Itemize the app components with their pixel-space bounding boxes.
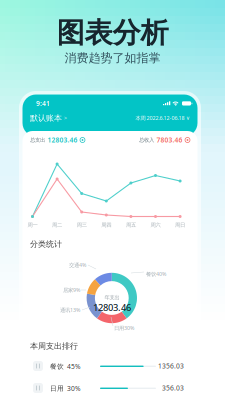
- staticText: 周六: [150, 222, 160, 228]
- staticText: 分类统计: [30, 239, 62, 249]
- staticText: 7803.46: [156, 136, 182, 144]
- staticText: 周四: [101, 222, 111, 228]
- button[interactable]: 本周 2022.6.12-06.18: [0, 0, 82, 10]
- staticText: 日用30%: [114, 324, 134, 332]
- staticText: 1356.03: [158, 361, 184, 370]
- button[interactable]: 默认账本: [0, 0, 60, 12]
- staticText: 交通4%: [69, 261, 86, 269]
- staticText: 本周支出排行: [30, 341, 78, 351]
- staticText: 周三: [77, 222, 87, 228]
- staticText: 12803.46: [47, 136, 77, 144]
- staticText: 日用: [50, 384, 64, 393]
- staticText: 本周 2022.6.12-06.18: [135, 114, 184, 122]
- staticText: 45%: [67, 362, 81, 371]
- staticText: >: [64, 114, 67, 122]
- staticText: 餐饮: [50, 362, 64, 371]
- staticText: 通讯13%: [60, 306, 80, 314]
- staticText: 餐饮40%: [146, 270, 166, 278]
- staticText: 周一: [27, 222, 37, 228]
- staticText: 消费趋势了如指掌: [64, 51, 160, 65]
- staticText: 356.03: [162, 383, 184, 392]
- staticText: 默认账本: [30, 113, 62, 123]
- staticText: 12803.46: [93, 301, 131, 314]
- button[interactable]: 日用: [0, 0, 225, 400]
- staticText: 图表分析: [56, 16, 168, 50]
- staticText: 居家9%: [63, 286, 80, 294]
- staticText: 总支出: [30, 137, 45, 143]
- staticText: 周二: [52, 222, 62, 228]
- staticText: ∨: [186, 115, 190, 121]
- button[interactable]: 餐饮: [0, 0, 225, 400]
- staticText: 总收入: [139, 137, 154, 143]
- staticText: 周五: [126, 222, 136, 228]
- staticText: 9:41: [36, 99, 50, 108]
- staticText: 30%: [67, 384, 81, 393]
- staticText: 年支出: [104, 294, 119, 301]
- staticText: 周日: [175, 222, 185, 228]
